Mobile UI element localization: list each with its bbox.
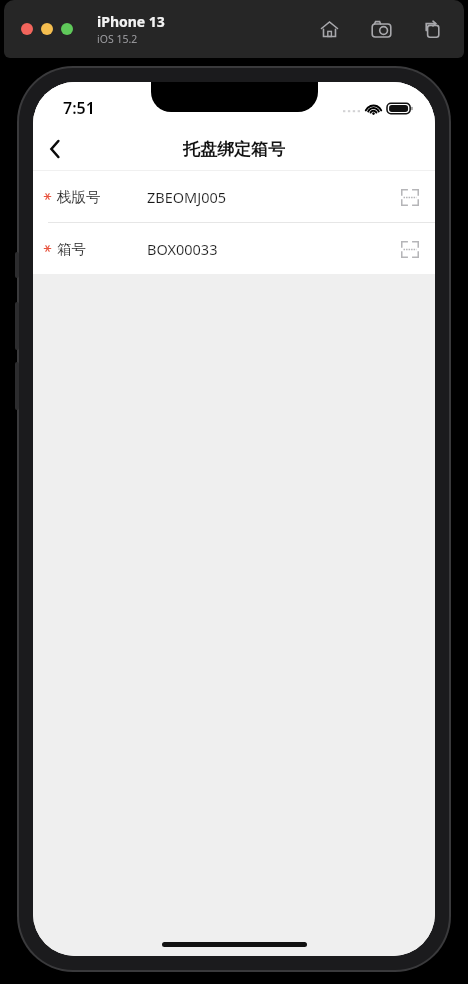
button[interactable]: Back — [33, 128, 77, 170]
staticText: iOS 15.2 — [97, 32, 138, 46]
staticText: 箱号 — [57, 240, 86, 258]
button[interactable]: Rotate — [420, 16, 446, 42]
staticText: 栈版号 — [57, 188, 101, 206]
button[interactable] — [21, 23, 33, 35]
staticText: iPhone 13 — [97, 12, 165, 31]
button[interactable]: 箱号 — [33, 223, 435, 274]
button[interactable]: Scan 箱号 — [390, 229, 430, 269]
staticText: 托盘绑定箱号 — [183, 139, 285, 160]
staticText: 7:51 — [63, 97, 95, 119]
button[interactable]: Home — [316, 16, 342, 42]
button[interactable]: 栈版号 — [33, 171, 435, 222]
staticText: BOX00033 — [147, 239, 218, 259]
staticText: ZBEOMJ005 — [147, 187, 227, 207]
button[interactable]: Scan 栈版号 — [390, 177, 430, 217]
button[interactable]: Screenshot — [368, 16, 394, 42]
button[interactable] — [41, 23, 53, 35]
button[interactable] — [61, 23, 73, 35]
